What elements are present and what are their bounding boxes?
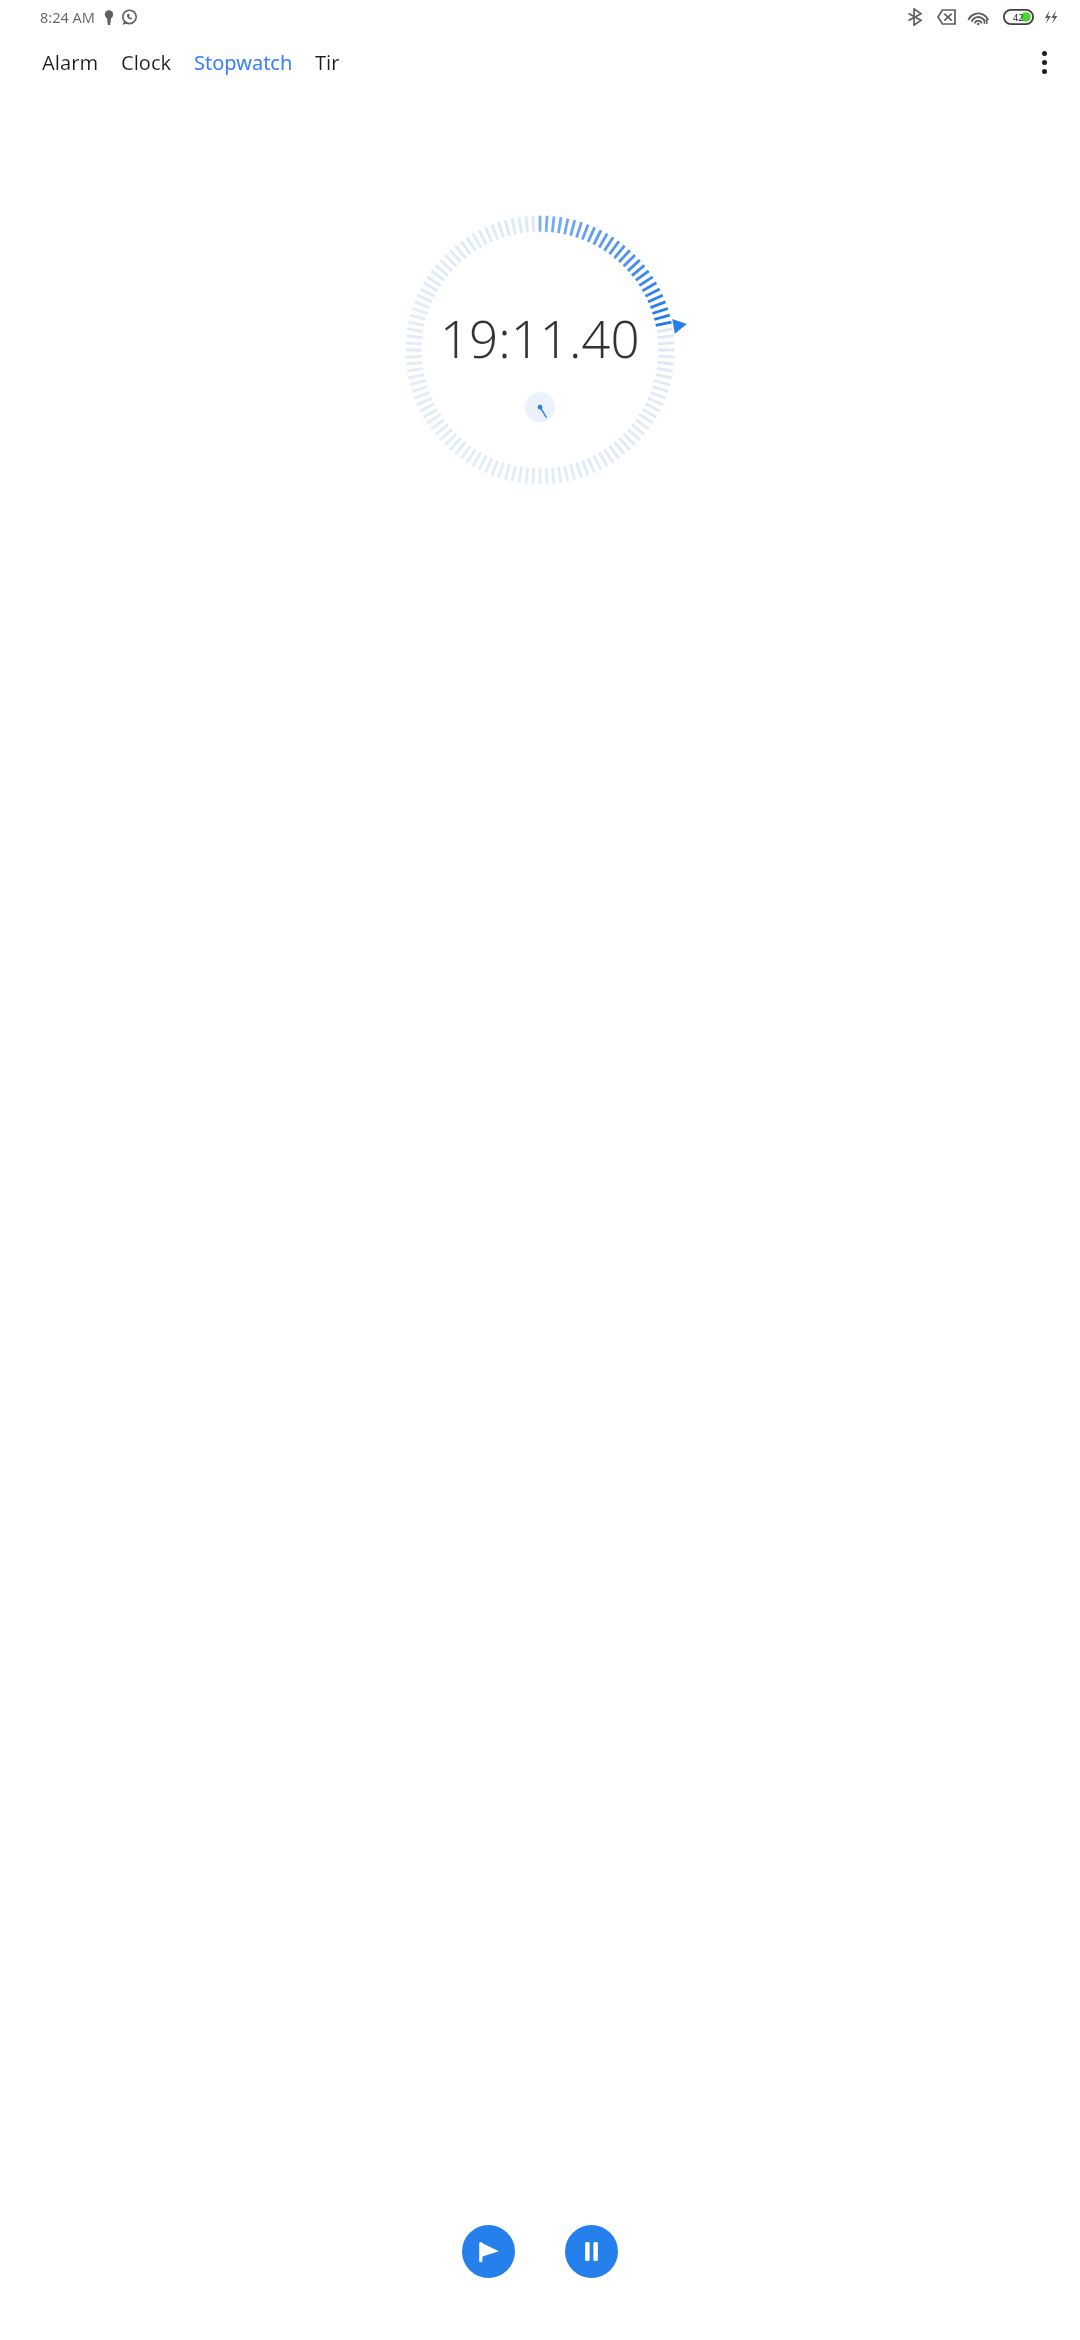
staticText: 42 (1013, 11, 1024, 23)
staticText: Tir (315, 49, 340, 76)
staticText: 8:24 AM (40, 7, 95, 27)
staticText: Alarm (42, 49, 99, 76)
button[interactable]: Lap (462, 2225, 515, 2278)
button[interactable]: Tir (309, 43, 346, 82)
button[interactable]: More options (1022, 40, 1066, 84)
button[interactable]: Clock (115, 43, 178, 82)
staticText: Stopwatch (194, 49, 293, 76)
button[interactable]: Stopwatch (188, 43, 299, 82)
staticText: 19:11.40 (440, 303, 640, 372)
button[interactable]: Pause (565, 2225, 618, 2278)
button[interactable]: Alarm (36, 43, 105, 82)
staticText: Clock (121, 49, 172, 76)
